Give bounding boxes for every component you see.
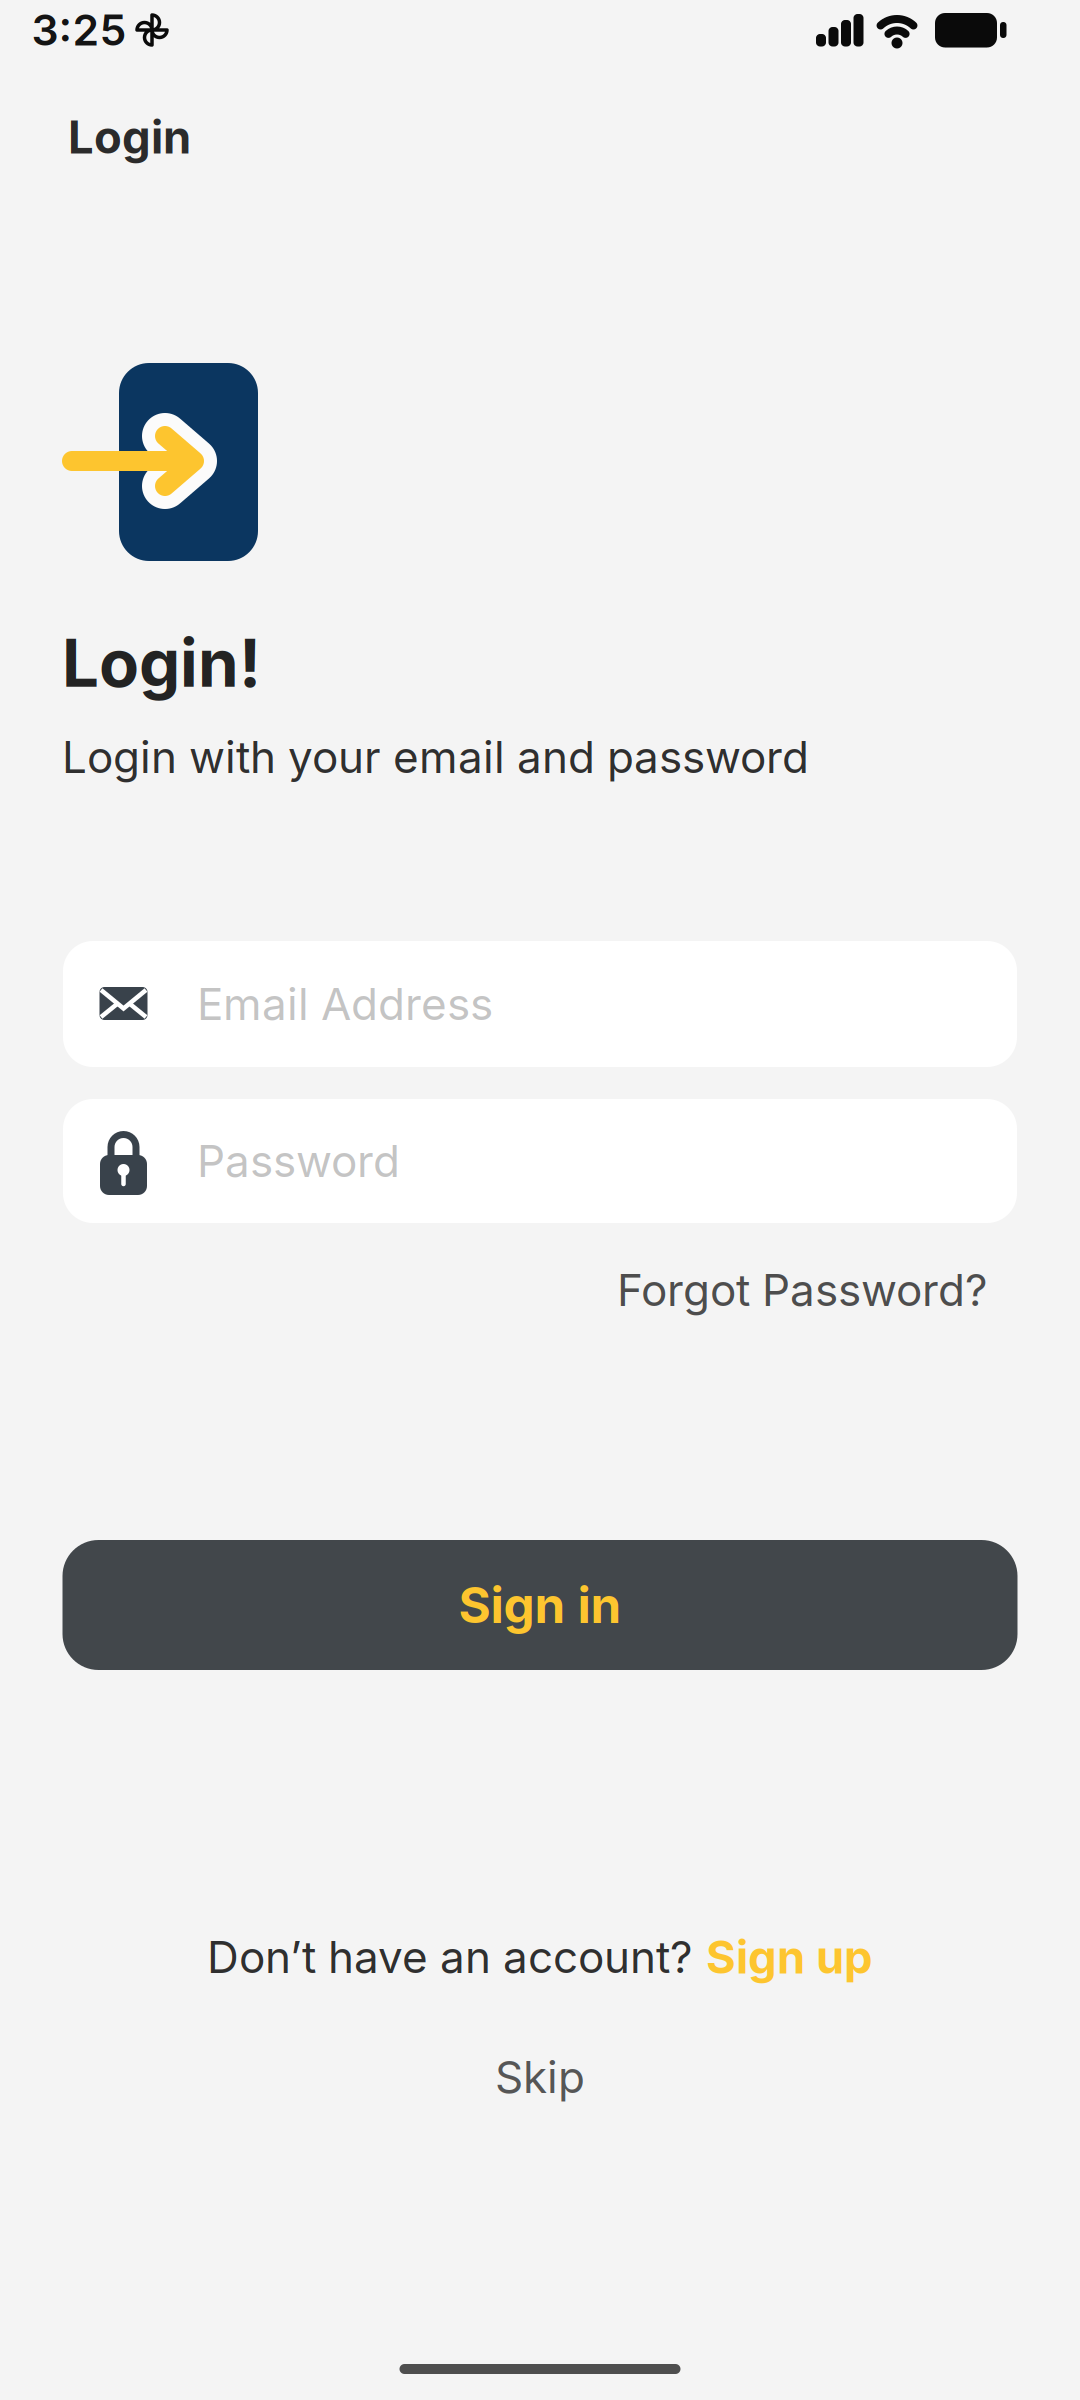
staticText: Forgot Password? bbox=[617, 1264, 987, 1316]
staticText: Login bbox=[68, 110, 191, 164]
staticText: Password bbox=[197, 1135, 400, 1187]
button[interactable]: Sign up bbox=[706, 1930, 873, 1984]
staticText: Login with your email and password bbox=[62, 731, 809, 783]
staticText: Login! bbox=[62, 624, 261, 702]
staticText: Sign in bbox=[458, 1576, 621, 1634]
staticText: Sign up bbox=[706, 1930, 873, 1984]
button[interactable]: Forgot Password? bbox=[617, 1264, 987, 1316]
button[interactable]: Skip bbox=[495, 2051, 585, 2103]
staticText: 3:25 bbox=[31, 5, 126, 55]
staticText: Email Address bbox=[197, 978, 493, 1030]
button[interactable]: Sign in bbox=[62, 1540, 1017, 1670]
staticText: Skip bbox=[495, 2051, 585, 2103]
staticText: Don’t have an account? bbox=[207, 1931, 692, 1983]
